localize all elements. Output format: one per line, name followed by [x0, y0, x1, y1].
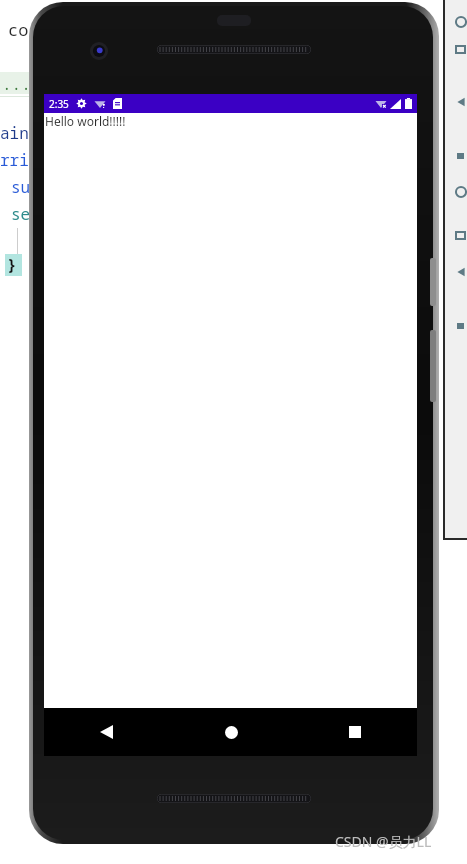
- staticText: ain: [0, 122, 29, 144]
- staticText: se: [11, 203, 31, 225]
- button[interactable]: Tool 5: [455, 230, 467, 242]
- staticText: }: [7, 254, 17, 276]
- button[interactable]: Back: [44, 708, 169, 756]
- staticText: 2:35: [49, 97, 69, 111]
- button[interactable]: Volume: [430, 330, 436, 402]
- button[interactable]: Tool 0: [455, 16, 467, 28]
- button[interactable]: Tool 3: [455, 150, 467, 162]
- button[interactable]: Tool 1: [455, 44, 467, 56]
- button[interactable]: Tool 6: [455, 266, 467, 278]
- staticText: su: [11, 176, 31, 198]
- staticText: CSDN @员力LL: [335, 832, 432, 851]
- button[interactable]: Power: [430, 258, 436, 306]
- button[interactable]: Recent apps: [293, 708, 417, 756]
- staticText: rri: [0, 149, 29, 171]
- button[interactable]: Home: [169, 708, 293, 756]
- button[interactable]: Tool 7: [455, 320, 467, 332]
- button[interactable]: Tool 4: [455, 186, 467, 198]
- staticText: co: [8, 18, 29, 41]
- staticText: Hello world!!!!!: [45, 113, 126, 129]
- button[interactable]: Tool 2: [455, 96, 467, 108]
- staticText: ...: [2, 73, 31, 95]
